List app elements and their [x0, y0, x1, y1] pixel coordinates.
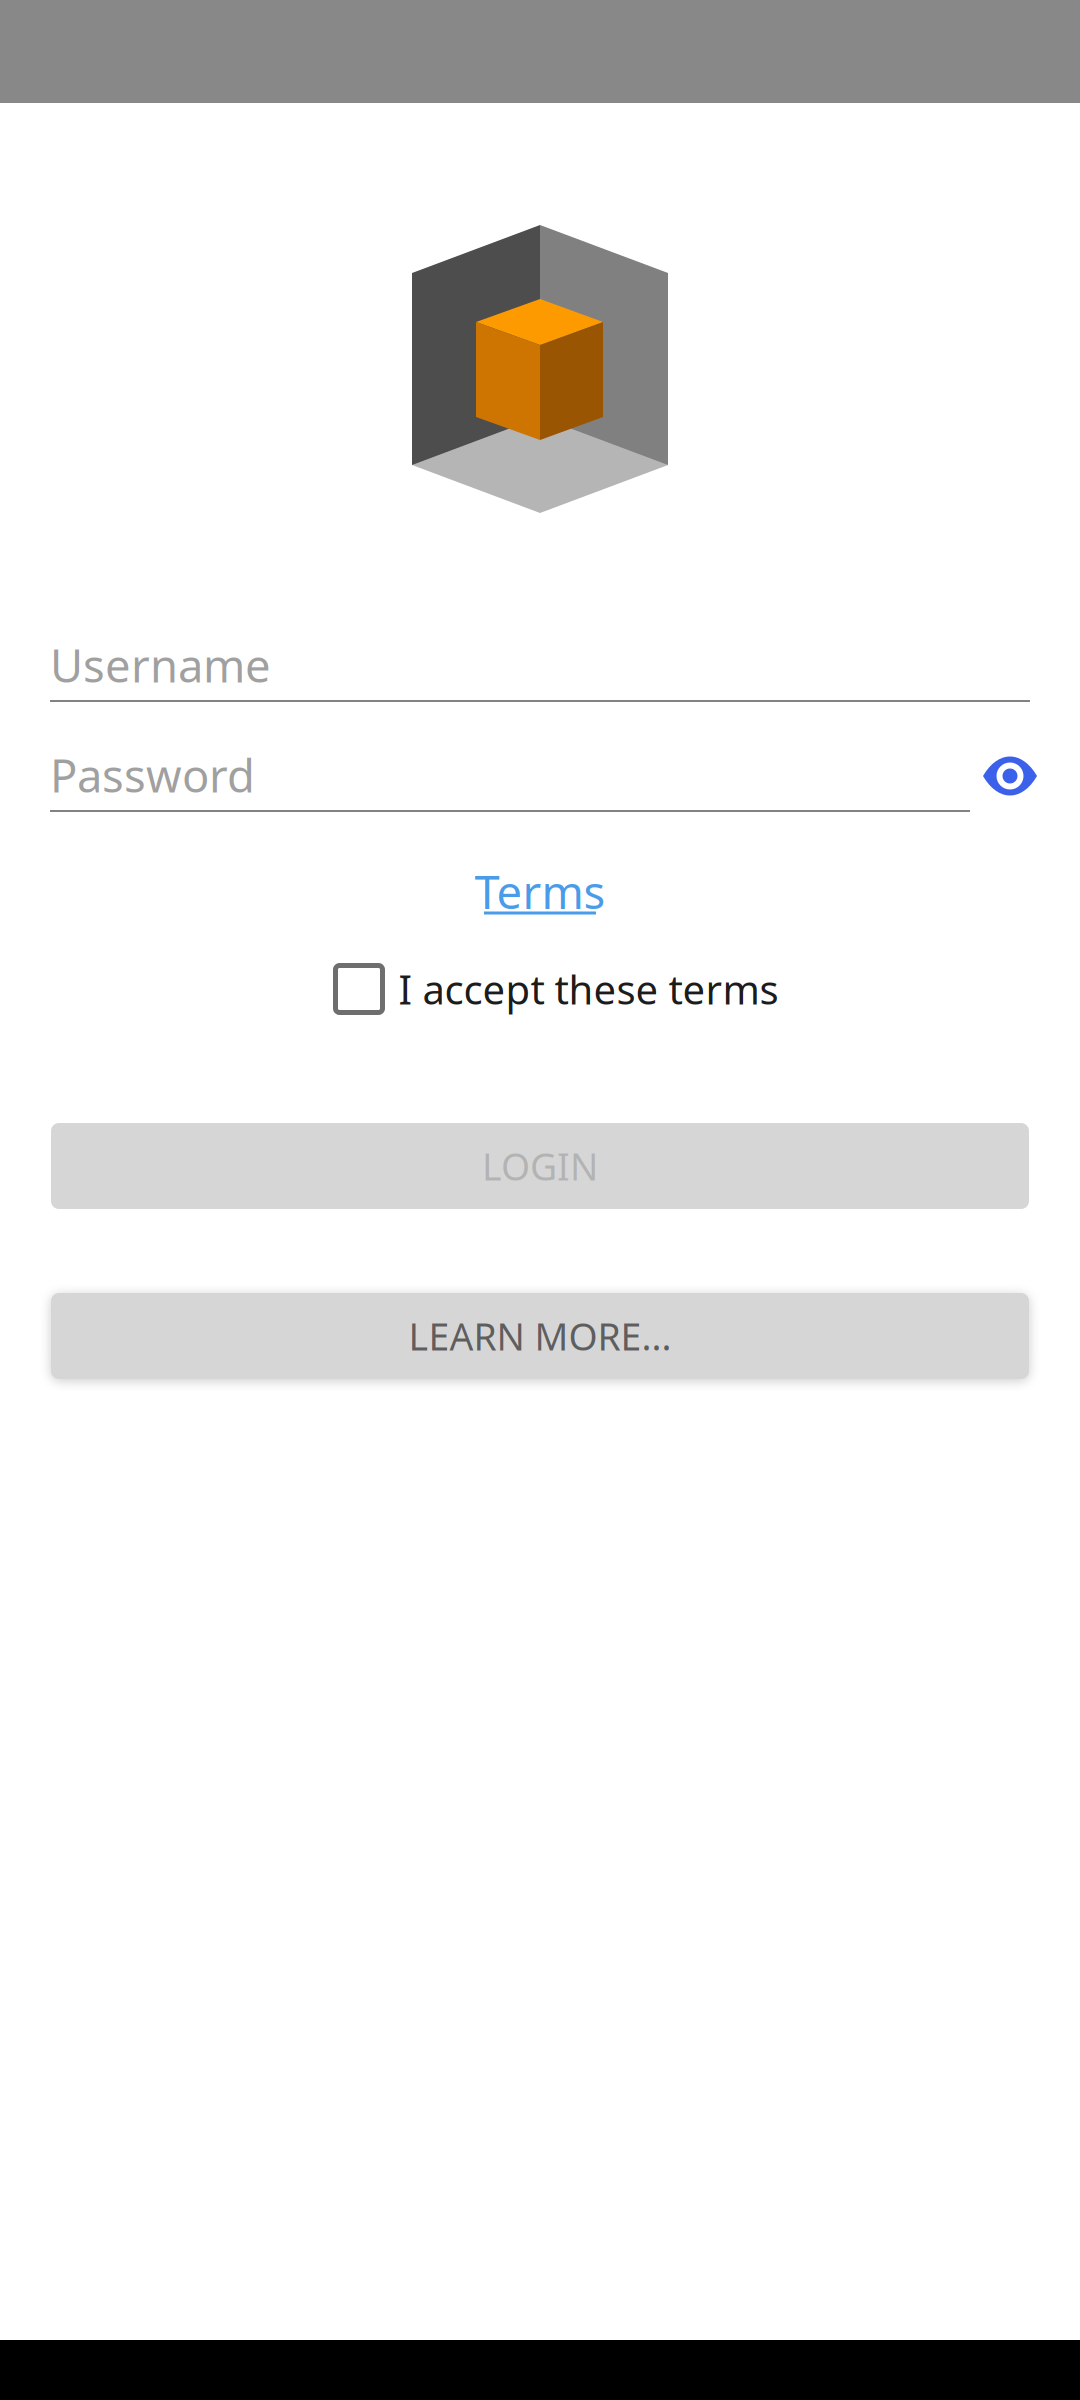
staticText: LOGIN [482, 1141, 598, 1191]
button[interactable]: Terms [390, 865, 690, 921]
staticText: Password [50, 745, 255, 805]
staticText: LEARN MORE... [408, 1311, 671, 1361]
button[interactable]: Show password [983, 750, 1037, 802]
button[interactable]: LOGIN [51, 1123, 1029, 1209]
staticText: Username [50, 635, 271, 695]
button[interactable]: LEARN MORE... [51, 1293, 1029, 1379]
staticText: I accept these terms [398, 962, 778, 1015]
staticText: Terms [474, 861, 605, 922]
button[interactable]: I accept these terms [301, 959, 778, 1019]
